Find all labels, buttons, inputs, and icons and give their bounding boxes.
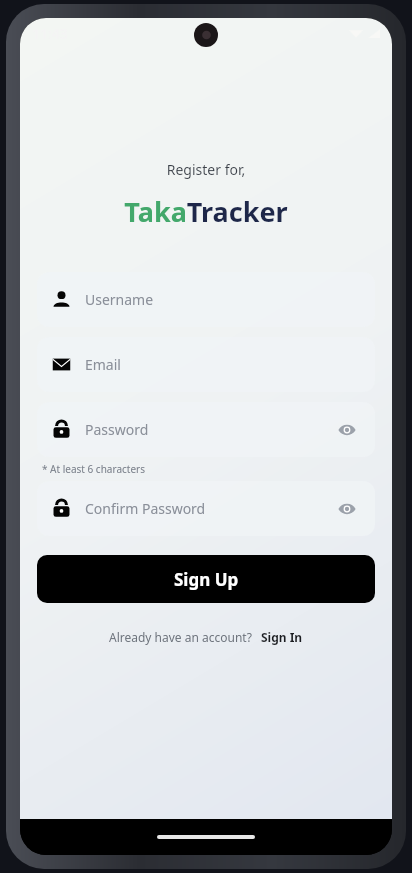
staticText: TakaTracker bbox=[20, 193, 392, 230]
staticText: Register for, bbox=[20, 160, 392, 179]
button[interactable]: Email bbox=[37, 337, 375, 392]
button[interactable]: Show password bbox=[334, 496, 360, 522]
staticText: Sign In bbox=[261, 629, 303, 645]
staticText: Confirm Password bbox=[85, 499, 334, 518]
staticText: Email bbox=[85, 355, 360, 374]
staticText: * At least 6 characters bbox=[42, 462, 145, 476]
button[interactable]: Show password bbox=[334, 417, 360, 443]
staticText: Username bbox=[85, 290, 360, 309]
button[interactable]: Sign Up bbox=[37, 555, 375, 603]
button[interactable]: Confirm Password bbox=[37, 481, 375, 536]
staticText: Password bbox=[85, 420, 334, 439]
staticText: Already have an account? bbox=[109, 629, 252, 645]
staticText: Sign Up bbox=[174, 568, 239, 591]
button[interactable]: Password bbox=[37, 402, 375, 457]
button[interactable]: Username bbox=[37, 272, 375, 327]
button[interactable]: Sign In bbox=[252, 627, 303, 647]
